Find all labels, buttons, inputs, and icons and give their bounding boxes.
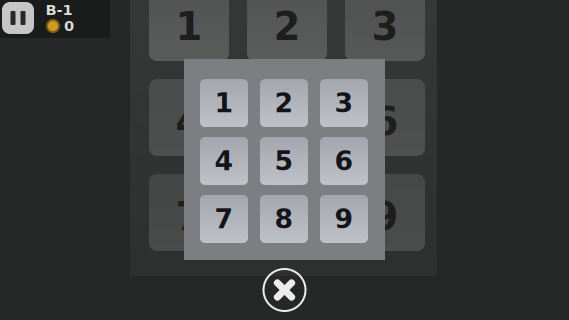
button[interactable]: 3 xyxy=(320,79,368,127)
staticText: 3 xyxy=(371,4,398,49)
button[interactable]: 2 xyxy=(260,79,308,127)
staticText: 4 xyxy=(175,99,202,144)
staticText: 5 xyxy=(274,145,293,176)
button[interactable]: 8 xyxy=(260,195,308,243)
staticText: 2 xyxy=(274,87,293,118)
button[interactable]: Pause xyxy=(2,2,34,34)
staticText: 4 xyxy=(214,145,233,176)
staticText: 8 xyxy=(273,194,300,239)
button[interactable]: 5 xyxy=(260,137,308,185)
staticText: 7 xyxy=(175,194,202,239)
staticText: 1 xyxy=(214,87,233,118)
staticText: 0 xyxy=(64,17,74,35)
button[interactable]: 1 xyxy=(200,79,248,127)
staticText: 6 xyxy=(371,99,398,144)
staticText: 9 xyxy=(371,194,398,239)
staticText: B-1 xyxy=(45,1,72,19)
staticText: 9 xyxy=(334,203,353,234)
button[interactable]: 9 xyxy=(320,195,368,243)
staticText: 2 xyxy=(273,4,300,49)
button[interactable]: 6 xyxy=(320,137,368,185)
staticText: 7 xyxy=(214,203,233,234)
staticText: 1 xyxy=(175,4,202,49)
button[interactable]: 4 xyxy=(200,137,248,185)
button[interactable]: Close xyxy=(260,266,308,314)
button[interactable]: 7 xyxy=(200,195,248,243)
staticText: 6 xyxy=(334,145,353,176)
staticText: 5 xyxy=(273,99,300,144)
staticText: 8 xyxy=(274,203,293,234)
staticText: 3 xyxy=(334,87,353,118)
